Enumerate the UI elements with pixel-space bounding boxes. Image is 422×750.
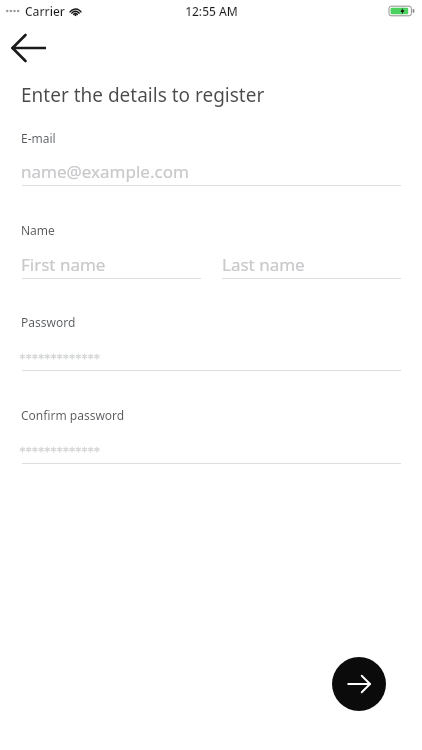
staticText: Enter the details to register: [21, 82, 265, 108]
staticText: Carrier: [25, 3, 65, 19]
button[interactable]: Back: [4, 27, 54, 69]
button[interactable]: name@example.com: [21, 157, 281, 185]
staticText: name@example.com: [21, 160, 189, 183]
staticText: Last name: [222, 253, 305, 276]
staticText: Password: [21, 314, 76, 330]
button[interactable]: First name: [21, 250, 196, 278]
button[interactable]: Continue: [332, 657, 386, 711]
staticText: Confirm password: [21, 407, 125, 423]
staticText: Name: [21, 222, 55, 238]
staticText: First name: [21, 253, 106, 276]
button[interactable]: Last name: [222, 250, 397, 278]
button[interactable]: [21, 434, 221, 462]
staticText: 12:55 AM: [185, 3, 238, 19]
button[interactable]: [21, 341, 221, 369]
staticText: E-mail: [21, 130, 56, 146]
